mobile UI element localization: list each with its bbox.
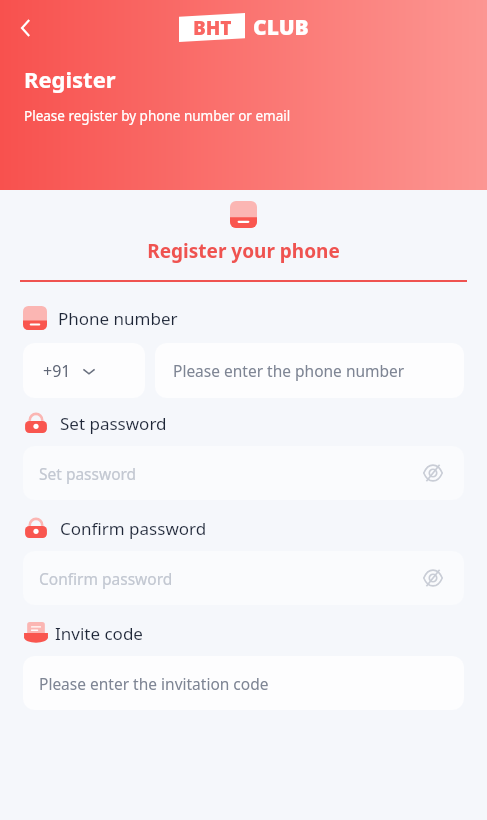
button[interactable]: Please enter the phone number	[155, 343, 464, 398]
button[interactable]: Back	[6, 8, 46, 48]
staticText: Please enter the phone number	[173, 360, 405, 381]
button[interactable]: Set password	[23, 446, 464, 500]
staticText: Confirm password	[39, 568, 173, 589]
staticText: Set password	[60, 412, 167, 435]
staticText: Register	[24, 64, 116, 94]
staticText: Confirm password	[60, 517, 207, 540]
staticText: Phone number	[58, 307, 178, 330]
staticText: BHT	[193, 15, 232, 41]
button[interactable]: Show password	[418, 458, 448, 488]
staticText: Please enter the invitation code	[39, 673, 269, 694]
staticText: Set password	[39, 463, 137, 484]
button[interactable]: Show password	[418, 563, 448, 593]
staticText: Invite code	[55, 622, 143, 645]
staticText: CLUB	[253, 13, 309, 42]
button[interactable]: +91	[23, 343, 145, 398]
staticText: Please register by phone number or email	[24, 107, 291, 125]
staticText: +91	[43, 360, 71, 382]
staticText: Register your phone	[0, 238, 487, 264]
button[interactable]: Please enter the invitation code	[23, 656, 464, 710]
button[interactable]: Confirm password	[23, 551, 464, 605]
